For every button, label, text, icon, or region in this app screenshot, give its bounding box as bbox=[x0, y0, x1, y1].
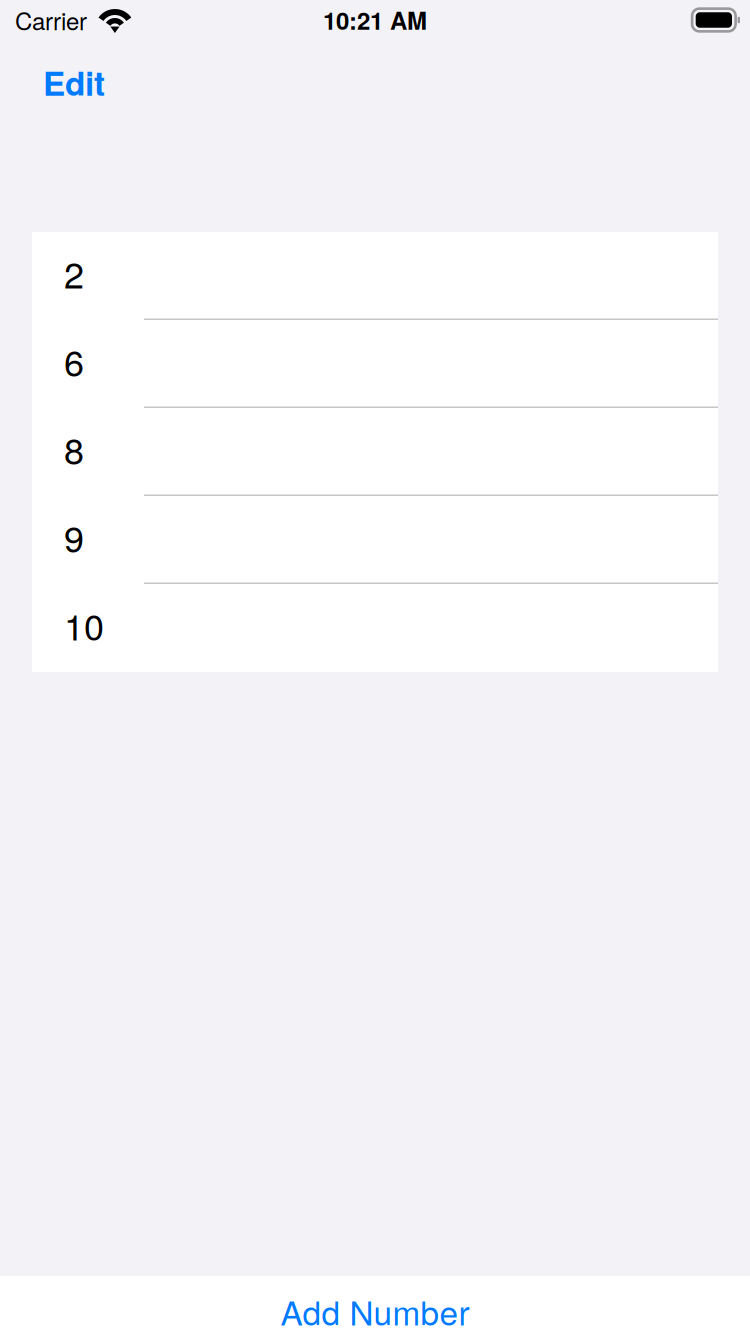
staticText: 10 bbox=[64, 599, 104, 651]
staticText: 9 bbox=[64, 511, 84, 563]
button[interactable]: Edit bbox=[33, 51, 115, 117]
button[interactable]: 10 bbox=[32, 584, 718, 672]
staticText: Add Number bbox=[280, 1287, 469, 1334]
staticText: 6 bbox=[64, 335, 84, 387]
staticText: 2 bbox=[64, 247, 84, 299]
button[interactable]: 6 bbox=[32, 320, 718, 408]
staticText: Carrier bbox=[15, 3, 87, 37]
button[interactable]: 2 bbox=[32, 232, 718, 320]
staticText: Edit bbox=[43, 58, 105, 106]
staticText: 8 bbox=[64, 423, 84, 475]
button[interactable]: 9 bbox=[32, 496, 718, 584]
staticText: 10:21 AM bbox=[323, 3, 427, 37]
button[interactable]: Add Number bbox=[280, 1273, 469, 1334]
button[interactable]: 8 bbox=[32, 408, 718, 496]
